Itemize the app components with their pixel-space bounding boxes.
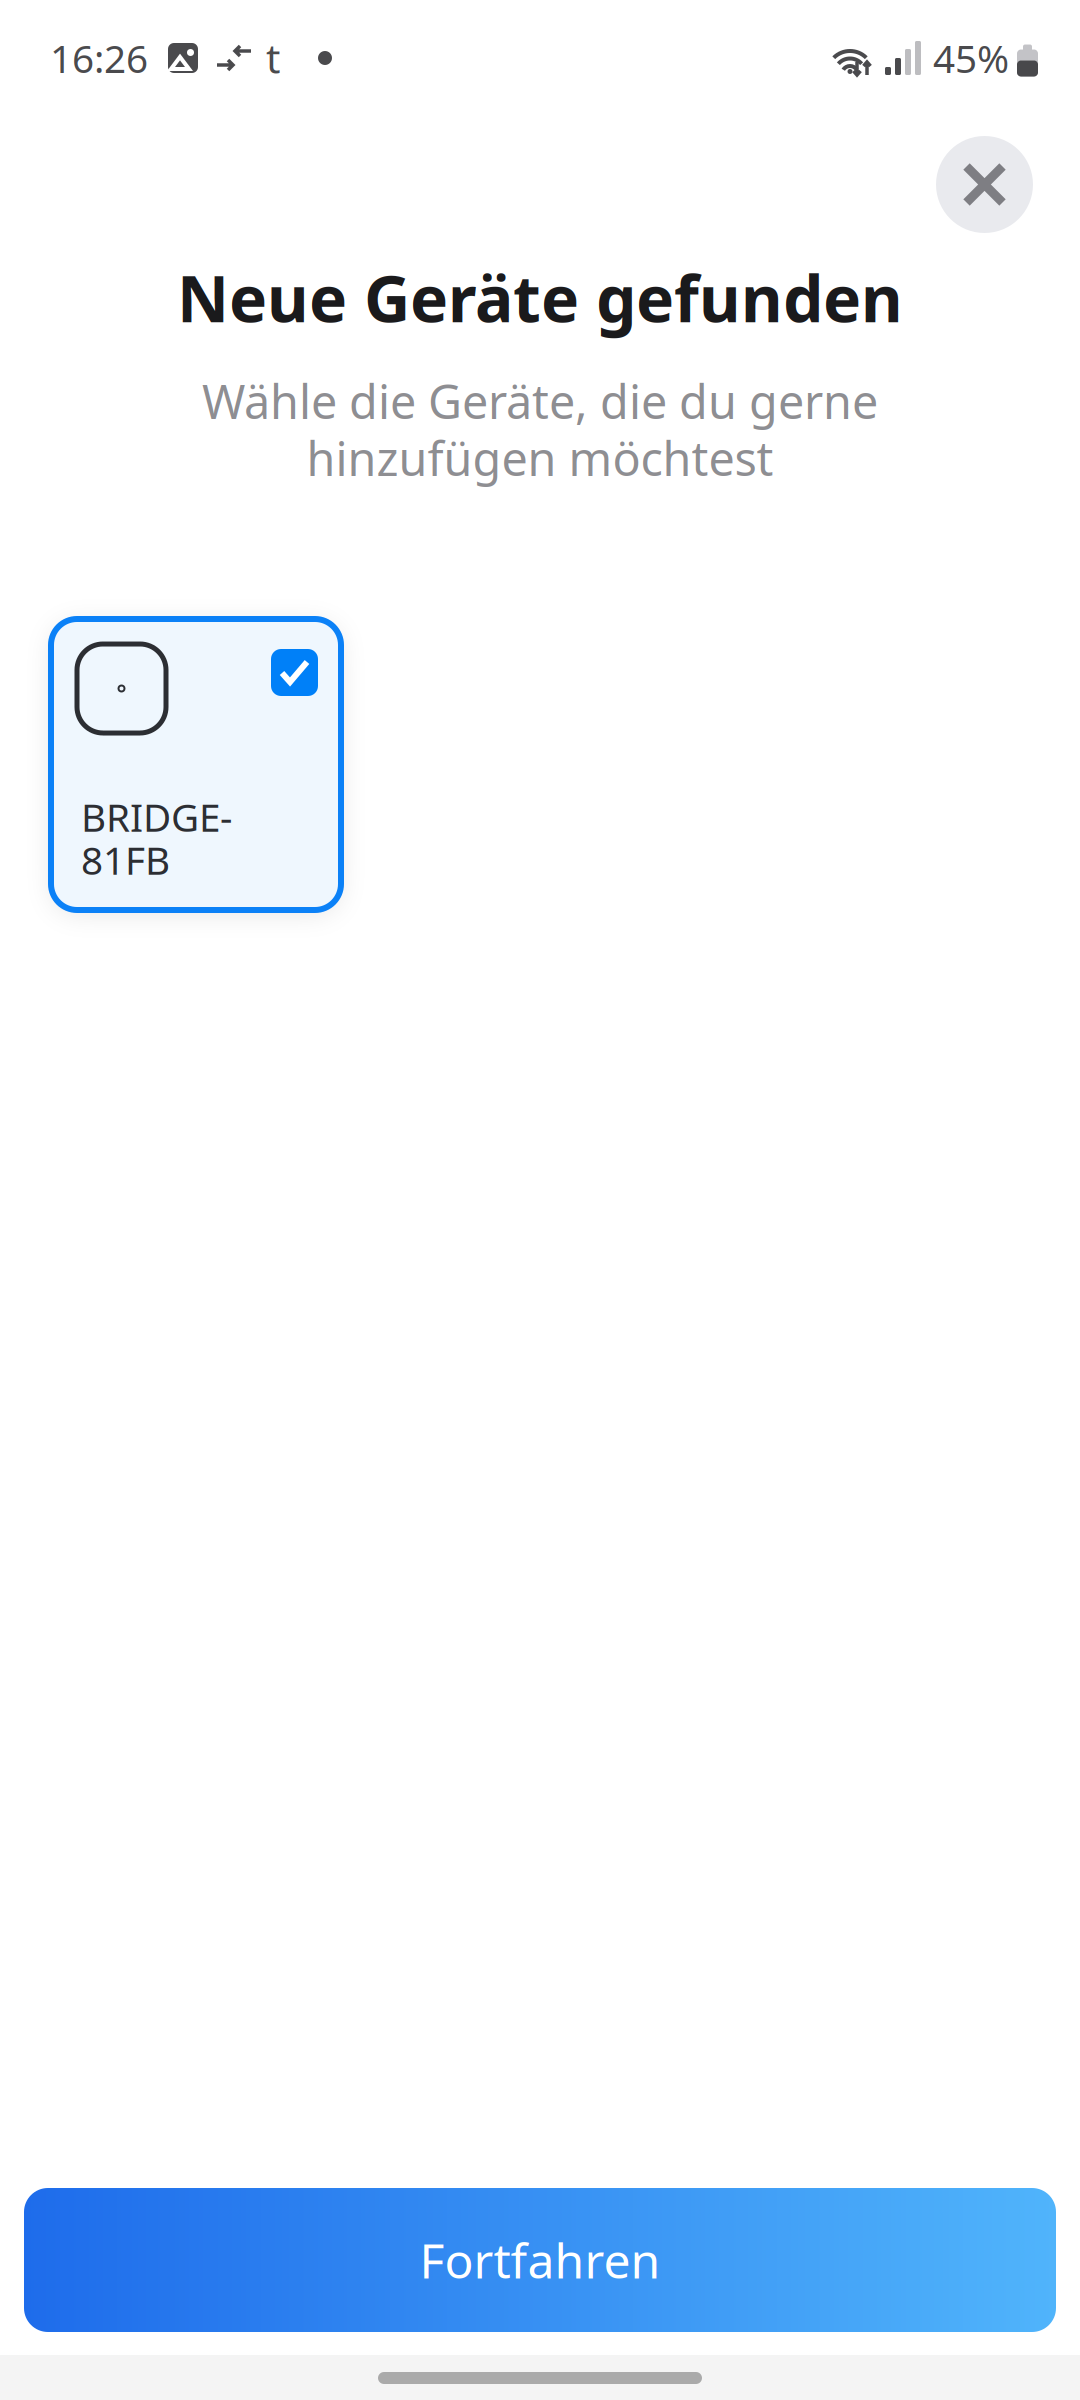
staticText: 81FB [81,834,170,885]
staticText: Fortfahren [419,2228,660,2292]
button[interactable]: BRIDGE- [51,619,341,910]
staticText: 16:26 [50,32,148,84]
button[interactable]: Close [936,136,1033,233]
staticText: Wähle die Geräte, die du gerne [202,370,878,432]
staticText: BRIDGE- [81,791,232,842]
staticText: hinzufügen möchtest [306,427,773,489]
staticText: Neue Geräte gefunden [177,255,903,340]
staticText: 45% [933,32,1009,84]
staticText: t [266,31,280,84]
button[interactable]: Fortfahren [24,2188,1056,2332]
